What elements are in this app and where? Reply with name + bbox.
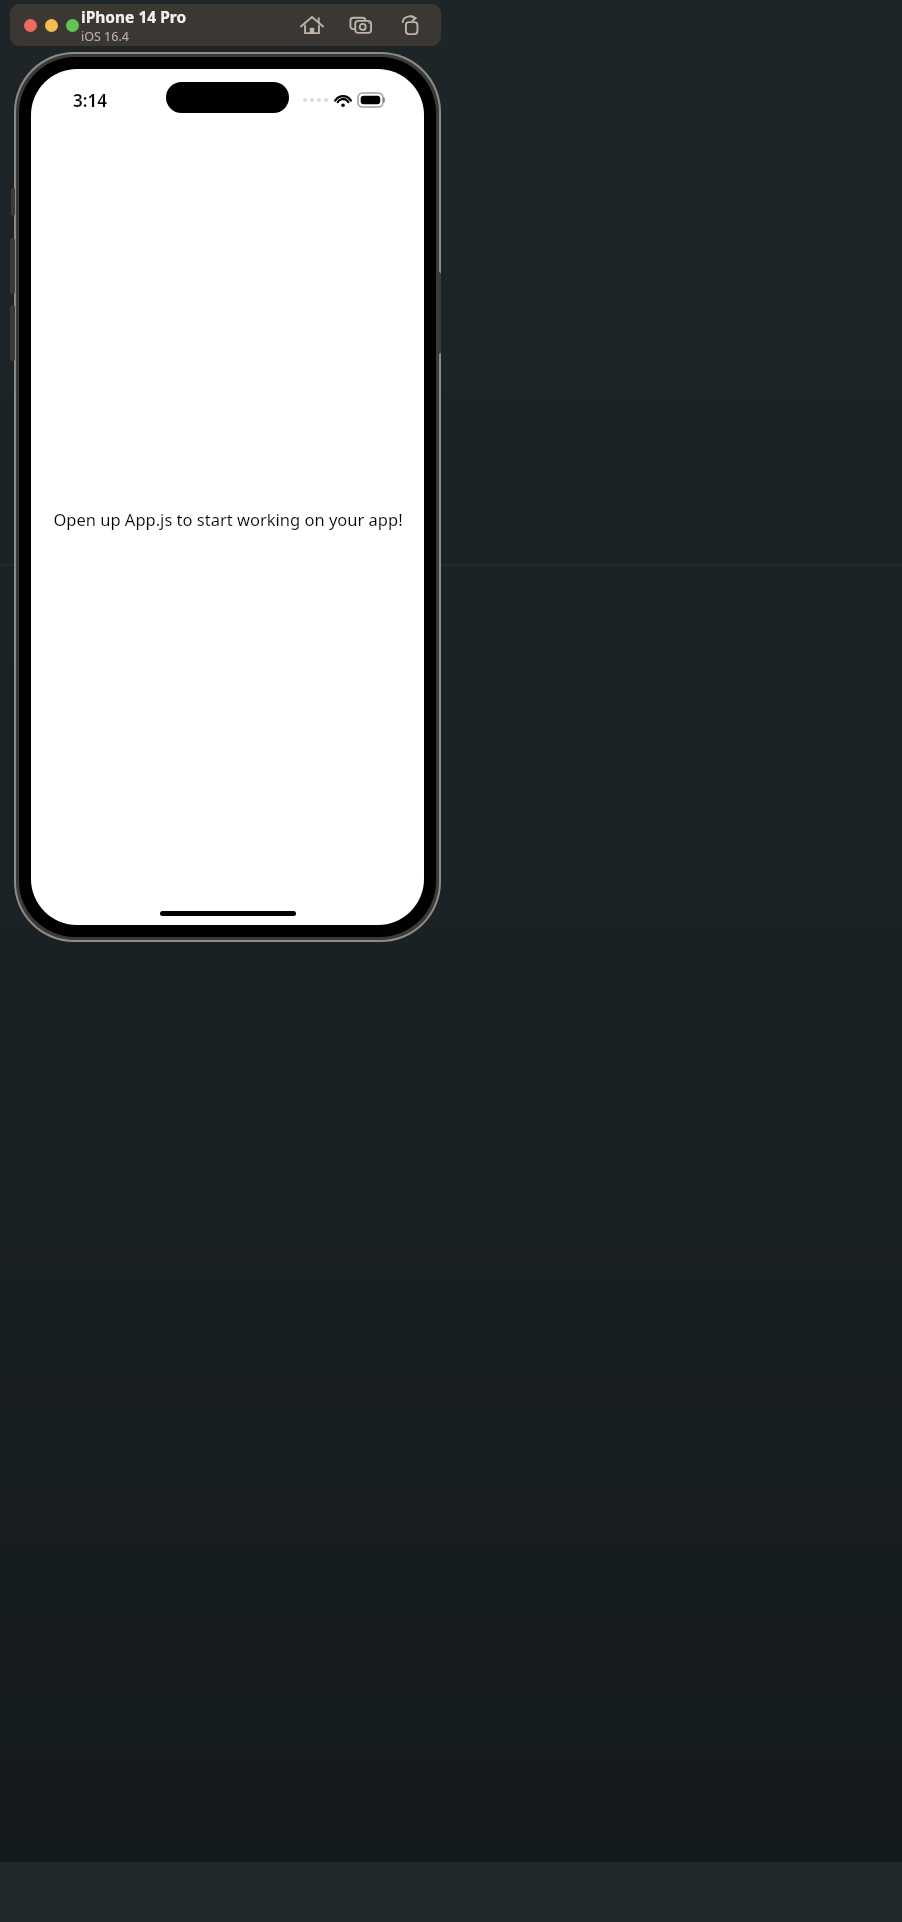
button[interactable]: Rotate device [395,10,425,40]
staticText: iPhone 14 Pro [81,6,187,27]
button[interactable]: Screenshot [346,10,376,40]
button[interactable]: Power [436,272,441,354]
button[interactable]: Minimize [45,19,58,32]
staticText: iOS 16.4 [81,28,129,45]
button[interactable]: Close [24,19,37,32]
button[interactable]: Silent switch [11,188,15,216]
button[interactable]: Zoom [66,19,79,32]
button[interactable]: Home [297,10,327,40]
button[interactable]: Volume down [10,305,15,361]
button[interactable]: Volume up [10,238,15,294]
staticText: 3:14 [73,89,107,112]
staticText: Open up App.js to start working on your … [53,508,403,530]
